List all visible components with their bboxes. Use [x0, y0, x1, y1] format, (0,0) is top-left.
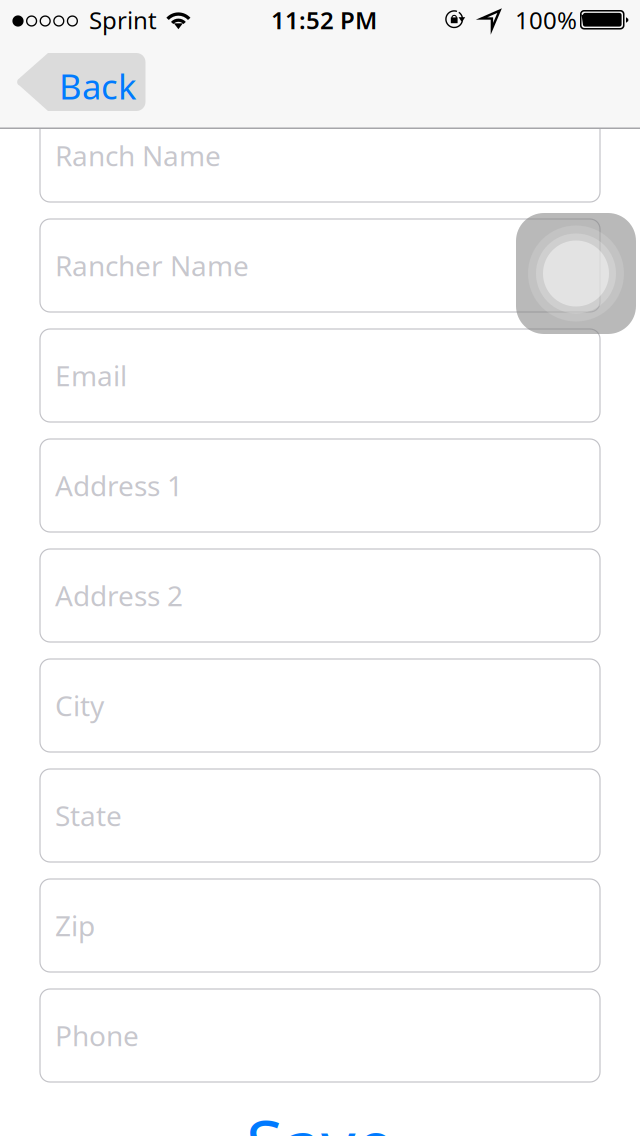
staticText: Rancher Name — [55, 247, 249, 284]
staticText: Zip — [55, 907, 95, 944]
staticText: State — [55, 797, 122, 834]
button[interactable]: Rancher Name — [40, 219, 600, 312]
staticText: City — [55, 687, 104, 724]
staticText: 11:52 PM — [271, 4, 377, 36]
button[interactable]: Save — [40, 1098, 600, 1136]
button[interactable]: Ranch Name — [40, 109, 600, 202]
staticText: Phone — [55, 1017, 139, 1054]
button[interactable]: Back — [15, 53, 146, 111]
button[interactable]: Address 1 — [40, 439, 600, 532]
button[interactable]: Phone — [40, 989, 600, 1082]
staticText: Back — [59, 63, 137, 109]
button[interactable]: City — [40, 659, 600, 752]
staticText: Save — [246, 1098, 394, 1136]
staticText: Address 1 — [55, 467, 183, 504]
staticText: 100% — [515, 4, 577, 36]
staticText: Sprint — [89, 4, 157, 36]
button[interactable]: State — [40, 769, 600, 862]
button[interactable]: Zip — [40, 879, 600, 972]
button[interactable]: AssistiveTouch — [516, 213, 636, 334]
staticText: Email — [55, 357, 127, 394]
button[interactable]: Email — [40, 329, 600, 422]
staticText: Ranch Name — [55, 137, 221, 174]
button[interactable]: Address 2 — [40, 549, 600, 642]
staticText: Address 2 — [55, 577, 183, 614]
